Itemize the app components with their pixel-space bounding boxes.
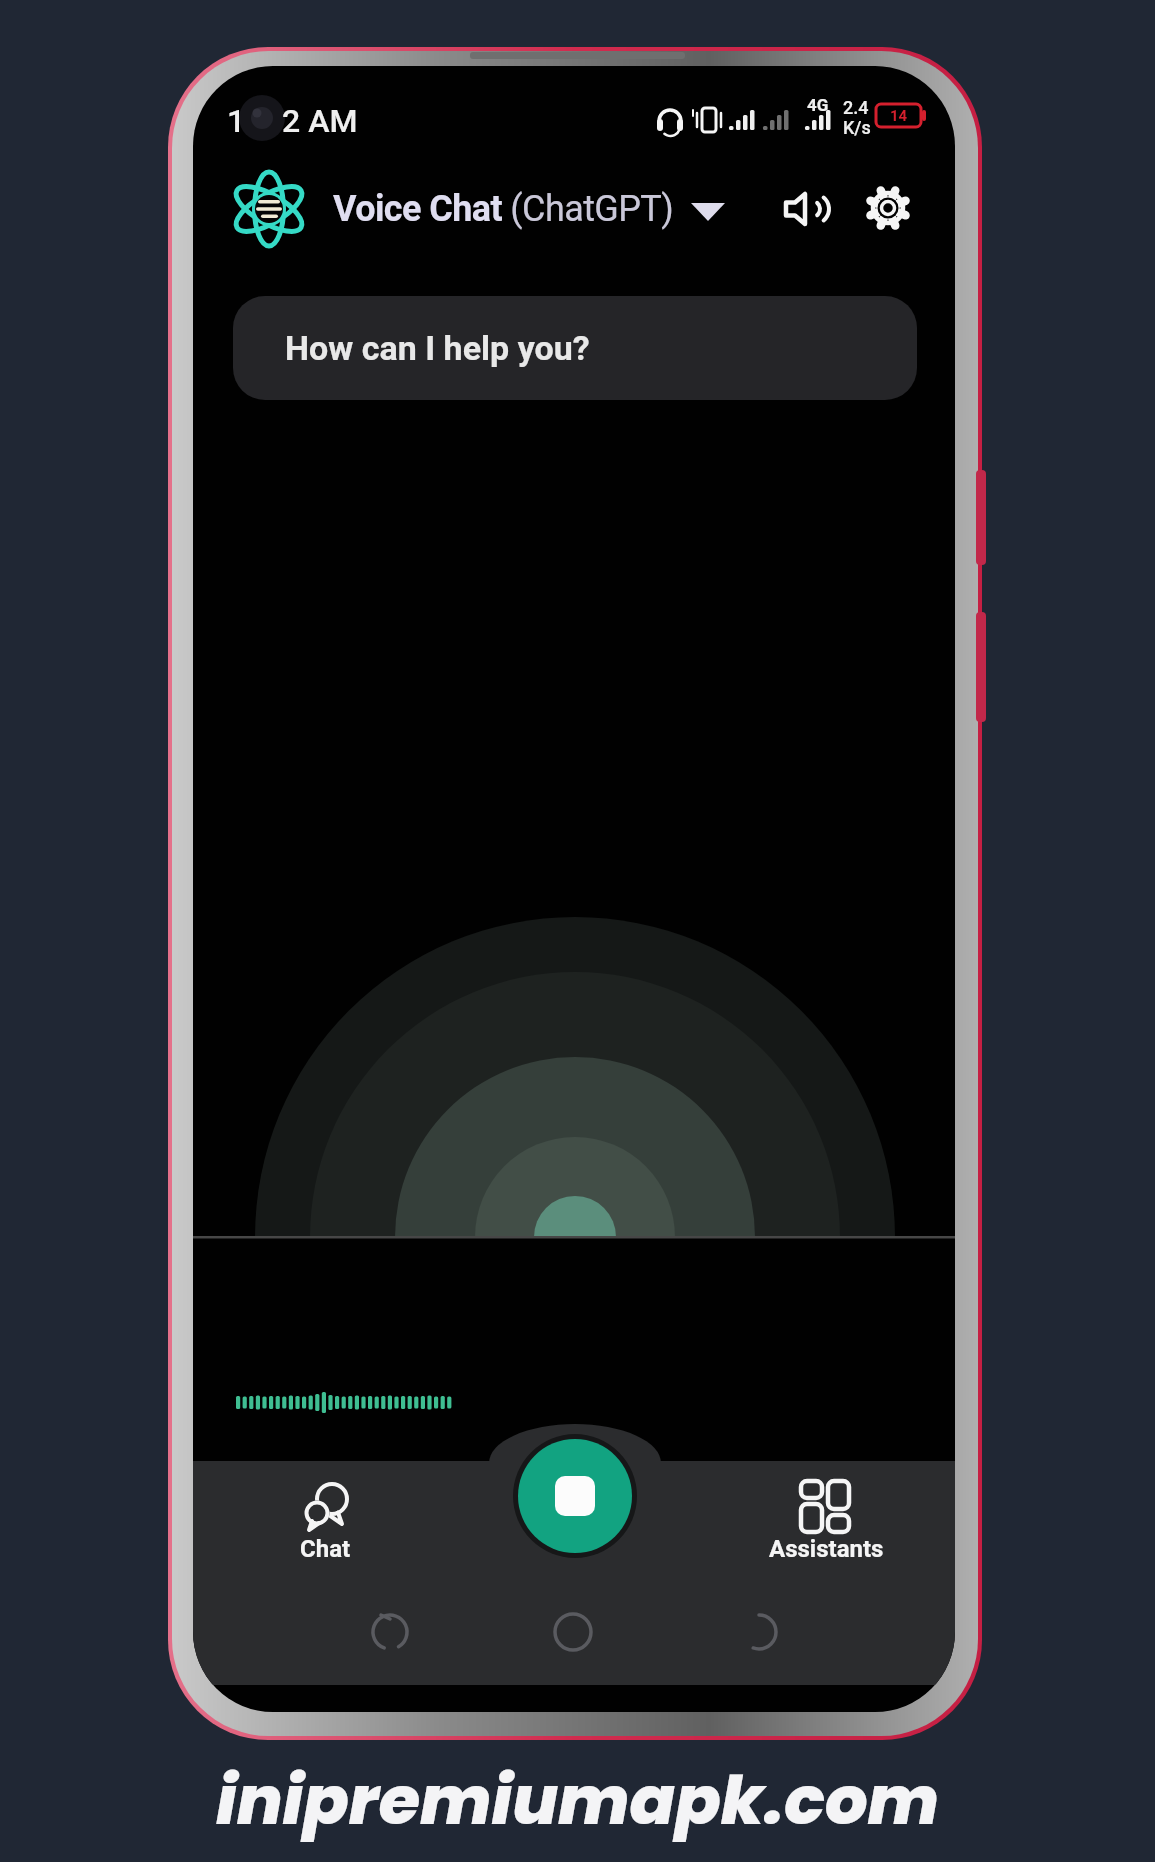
staticText: 2.4 — [843, 97, 869, 118]
button[interactable] — [729, 1602, 789, 1662]
staticText: 14 — [890, 107, 908, 125]
staticText: K/s — [843, 117, 871, 138]
button[interactable]: Voice Chat (ChatGPT) — [333, 181, 728, 237]
staticText: Voice Chat (ChatGPT) — [333, 188, 674, 230]
staticText: inipremiumapk.com — [216, 1754, 939, 1848]
staticText: 4G — [807, 95, 829, 115]
staticText: Assistants — [769, 1535, 884, 1563]
button[interactable]: Assistants — [751, 1470, 901, 1563]
button[interactable] — [778, 182, 833, 237]
button[interactable] — [861, 181, 916, 236]
button[interactable] — [518, 1439, 632, 1553]
button[interactable]: Chat — [265, 1470, 385, 1563]
button[interactable]: How can I help you? — [233, 296, 917, 400]
button[interactable] — [543, 1602, 603, 1662]
staticText: Chat — [300, 1535, 351, 1563]
button[interactable] — [360, 1602, 420, 1662]
staticText: 2 AM — [282, 102, 358, 140]
staticText: How can I help you? — [285, 328, 590, 368]
staticText: 1 — [227, 102, 246, 140]
